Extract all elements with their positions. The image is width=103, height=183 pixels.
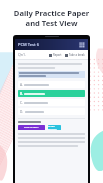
staticText: Take a break — [69, 53, 85, 57]
staticText: D. — [20, 110, 24, 114]
button[interactable]: A. — [18, 81, 85, 88]
staticText: Daily Practice Paper and Test View — [6, 8, 97, 28]
staticText: SAVE & NEXT — [24, 126, 39, 129]
staticText: Report — [53, 53, 62, 57]
button[interactable]: Question grid — [79, 42, 85, 48]
button[interactable]: D. — [18, 108, 85, 115]
staticText: A. — [20, 83, 23, 87]
staticText: Qn1. — [18, 52, 27, 57]
button[interactable]: MARK REVIEW — [48, 125, 61, 130]
button[interactable]: B. — [18, 90, 85, 97]
staticText: MARK REVIEW — [48, 125, 61, 130]
staticText: C. — [20, 101, 23, 105]
button[interactable]: Report — [49, 53, 62, 57]
staticText: B. — [20, 92, 23, 96]
button[interactable]: C. — [18, 99, 85, 106]
button[interactable]: SAVE & NEXT — [18, 125, 45, 130]
staticText: PCM Test 6 — [18, 42, 40, 47]
button[interactable]: Take a break — [65, 53, 85, 57]
